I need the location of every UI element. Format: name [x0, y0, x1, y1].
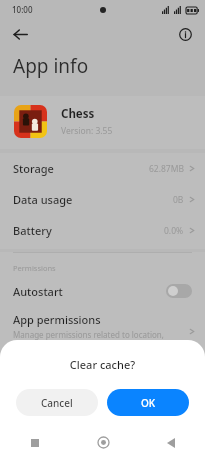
button[interactable]: OK	[107, 389, 189, 416]
button[interactable]: Other permissions	[0, 358, 205, 389]
staticText: Battery	[13, 223, 164, 238]
staticText: 0.0%	[164, 225, 184, 237]
button[interactable]: Autostart	[0, 276, 205, 306]
button[interactable]: Back	[137, 429, 205, 456]
staticText: Manage permissions related to location, …	[13, 329, 186, 351]
staticText: 10:00	[12, 4, 33, 15]
button[interactable]: Recents	[0, 429, 69, 456]
button[interactable]: Storage	[0, 153, 205, 184]
staticText: Allowed 3 permissions	[94, 368, 184, 380]
staticText: Storage	[13, 161, 149, 176]
button[interactable]: Autostart toggle, off	[166, 284, 192, 298]
button[interactable]: Data usage	[0, 184, 205, 215]
staticText: OK	[141, 396, 156, 410]
staticText: Version: 3.55	[61, 125, 113, 137]
staticText: App permissions	[13, 312, 101, 327]
button[interactable]: Home	[69, 429, 137, 456]
button[interactable]: Back	[6, 20, 34, 48]
staticText: 62.87MB	[149, 163, 184, 175]
staticText: Data usage	[13, 192, 173, 207]
staticText: 0B	[173, 194, 184, 206]
button[interactable]: Battery	[0, 215, 205, 246]
staticText: Chess	[61, 106, 95, 122]
button[interactable]: App permissions	[0, 306, 205, 358]
staticText: Other permissions	[13, 359, 94, 389]
button[interactable]: App details	[172, 21, 198, 47]
staticText: App info	[13, 53, 89, 79]
staticText: Autostart	[13, 284, 166, 299]
button[interactable]: Chess	[0, 96, 205, 149]
staticText: Cancel	[41, 396, 73, 410]
staticText: Permissions	[13, 263, 56, 273]
staticText: Clear cache?	[0, 357, 205, 372]
button[interactable]: Cancel	[16, 389, 98, 416]
